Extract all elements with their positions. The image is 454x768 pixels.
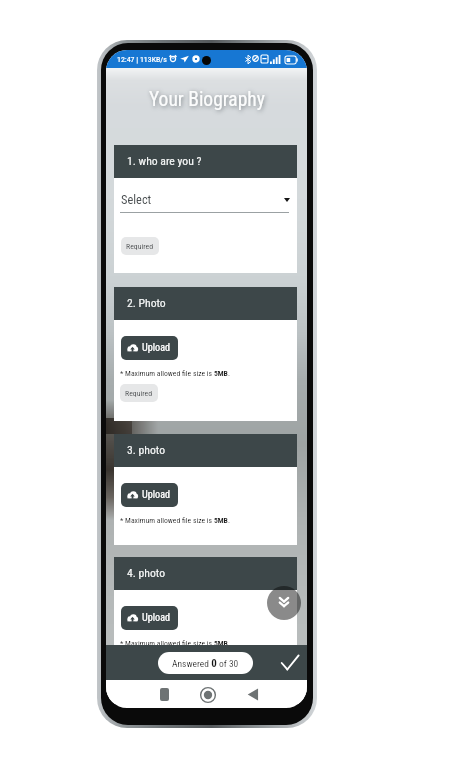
- button[interactable]: Upload: [121, 336, 178, 360]
- staticText: 2. Photo: [127, 296, 166, 310]
- staticText: Upload: [142, 342, 171, 354]
- staticText: Required: [126, 242, 154, 251]
- staticText: * Maximum allowed file size is 5MB.: [120, 516, 230, 525]
- button[interactable]: 1. who are you ?: [114, 145, 297, 178]
- button[interactable]: Recents: [154, 684, 175, 705]
- staticText: Upload: [142, 612, 171, 624]
- button[interactable]: 4. photo: [114, 557, 297, 590]
- staticText: Required: [125, 389, 153, 398]
- staticText: Your Biography: [149, 88, 265, 111]
- button[interactable]: Back: [242, 684, 263, 705]
- button[interactable]: Answered 0 of 30: [158, 652, 253, 674]
- button[interactable]: 3. photo: [114, 434, 297, 467]
- staticText: 1. who are you ?: [127, 154, 202, 168]
- button[interactable]: Scroll to bottom: [267, 586, 301, 620]
- button[interactable]: Upload: [121, 483, 178, 507]
- button[interactable]: 2. Photo: [114, 287, 297, 320]
- staticText: * Maximum allowed file size is 5MB.: [120, 369, 230, 378]
- staticText: * Maximum allowed file size is 5MB.: [120, 639, 230, 648]
- button[interactable]: Required: [121, 237, 159, 255]
- button[interactable]: Required: [120, 384, 158, 402]
- staticText: 12:47 | 113KB/s: [117, 55, 167, 64]
- staticText: 4. photo: [127, 566, 166, 580]
- staticText: 3. photo: [127, 443, 166, 457]
- staticText: Answered 0 of 30: [172, 657, 239, 670]
- staticText: Select: [121, 192, 152, 207]
- button[interactable]: Home: [197, 684, 218, 705]
- button[interactable]: Upload: [121, 606, 178, 630]
- button[interactable]: Submit: [278, 651, 302, 675]
- staticText: Upload: [142, 489, 171, 501]
